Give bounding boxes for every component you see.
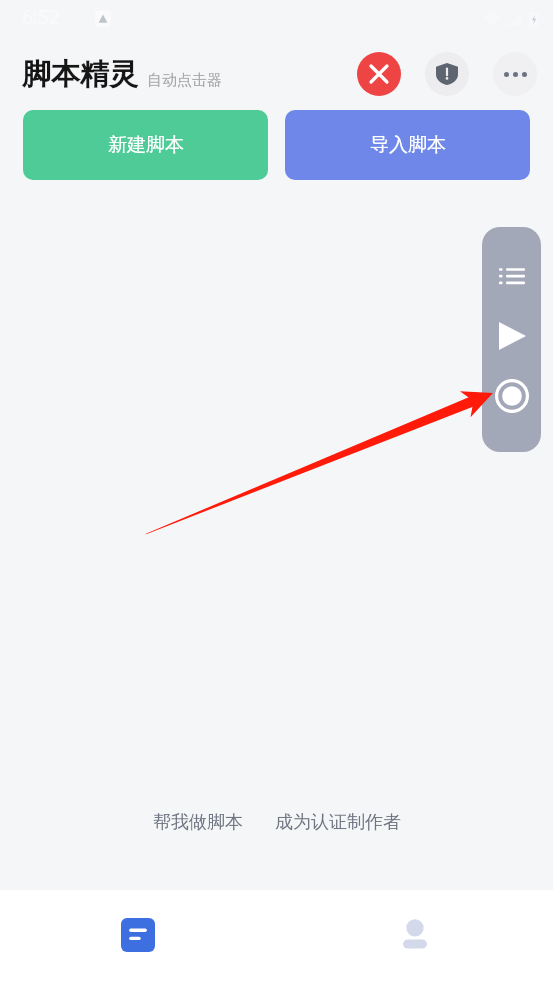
button[interactable]: Scripts <box>0 890 276 984</box>
button[interactable]: 导入脚本 <box>285 110 530 180</box>
button[interactable]: Play script <box>489 313 535 359</box>
button[interactable]: Record script <box>489 373 535 419</box>
button[interactable]: Script list <box>491 255 533 297</box>
button[interactable]: 成为认证制作者 <box>269 805 407 840</box>
button[interactable]: Stop service <box>357 52 401 96</box>
button[interactable]: Profile <box>276 890 553 984</box>
staticText: 自动点击器 <box>147 71 222 90</box>
button[interactable]: More options <box>493 52 537 96</box>
button[interactable]: Security <box>425 52 469 96</box>
staticText: 脚本精灵 <box>22 56 138 93</box>
button[interactable]: 帮我做脚本 <box>147 805 249 840</box>
button[interactable]: 新建脚本 <box>23 110 268 180</box>
staticText: 成为认证制作者 <box>275 811 401 834</box>
staticText: 帮我做脚本 <box>153 811 243 834</box>
staticText: 导入脚本 <box>370 133 446 157</box>
staticText: 新建脚本 <box>108 133 184 157</box>
